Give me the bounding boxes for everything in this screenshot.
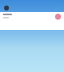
staticText: < xyxy=(57,4,60,12)
button[interactable]: Profile xyxy=(4,5,9,10)
button[interactable]: Share xyxy=(57,4,60,12)
